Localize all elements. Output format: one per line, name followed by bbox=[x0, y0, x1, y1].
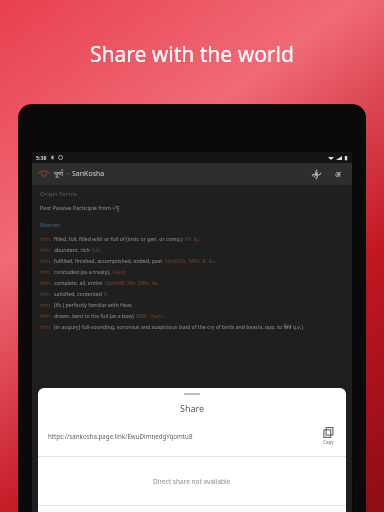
staticText: Kāv. bbox=[92, 246, 102, 253]
button[interactable]: Copy bbox=[321, 426, 336, 446]
staticText: R. bbox=[104, 290, 109, 297]
staticText: concluded (as a treaty), bbox=[54, 268, 111, 275]
staticText: 5:38 bbox=[36, 154, 47, 161]
staticText: Origin Forms bbox=[40, 190, 77, 198]
button[interactable]: Share link bbox=[308, 166, 324, 182]
staticText: drawn, bent to the full (as a bow) bbox=[54, 312, 134, 319]
staticText: Monier bbox=[40, 221, 61, 229]
staticText: mfn. bbox=[40, 246, 52, 253]
staticText: SāṅkhBr. Mn. MBh. &c. bbox=[105, 279, 160, 286]
staticText: abundant, rich bbox=[54, 246, 90, 253]
staticText: अ bbox=[335, 169, 341, 179]
staticText: RV. &c. bbox=[185, 235, 202, 242]
staticText: satisfied, contented bbox=[54, 290, 102, 297]
staticText: Copy bbox=[323, 439, 334, 445]
staticText: mfn. bbox=[40, 235, 52, 242]
staticText: Rājat. bbox=[113, 268, 127, 275]
staticText: (in augury) full-sounding, sonorous and … bbox=[54, 323, 303, 330]
staticText: mfn. bbox=[40, 301, 52, 308]
staticText: complete, all, entire bbox=[54, 279, 103, 286]
staticText: SāṅkhGṛ. MBh. R. &c. bbox=[165, 257, 217, 264]
staticText: Past Passive Participle from √पृ bbox=[40, 204, 119, 211]
staticText: · bbox=[67, 169, 69, 179]
staticText: mfn. bbox=[40, 312, 52, 319]
staticText: SanKosha bbox=[72, 169, 105, 179]
staticText: Share with the world bbox=[90, 40, 294, 69]
staticText: Direct share not available bbox=[153, 477, 231, 486]
staticText: mfn. bbox=[40, 268, 52, 275]
staticText: mfn. bbox=[40, 290, 52, 297]
staticText: https://sankosha.page.link/EwuDimnedgYqo… bbox=[48, 432, 321, 440]
staticText: पूर्ण bbox=[54, 169, 64, 179]
staticText: (ifc.) perfectly familiar with Heat. bbox=[54, 301, 133, 308]
staticText: mfn. bbox=[40, 257, 52, 264]
staticText: mfn. bbox=[40, 323, 52, 330]
staticText: MBh. Hariv. bbox=[136, 312, 165, 319]
button[interactable]: Script options bbox=[330, 166, 346, 182]
staticText: mfn. bbox=[40, 279, 52, 286]
staticText: filled, full, filled with or full of (in… bbox=[54, 235, 183, 242]
staticText: fulfilled, finished, accomplished, ended… bbox=[54, 257, 163, 264]
staticText: Share bbox=[180, 402, 205, 414]
